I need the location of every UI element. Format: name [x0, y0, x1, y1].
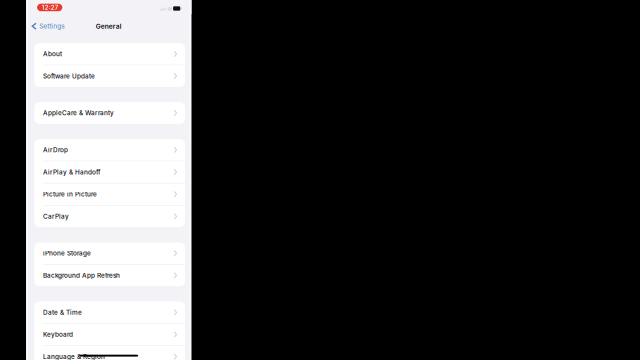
staticText: Keyboard [43, 331, 73, 338]
staticText: AirDrop [43, 146, 68, 154]
staticText: Language & Region [43, 353, 105, 360]
staticText: About [43, 50, 62, 58]
button[interactable]: Background App Refresh [34, 265, 185, 286]
button[interactable]: Keyboard [34, 324, 185, 345]
button[interactable]: AirDrop [34, 139, 185, 161]
button[interactable]: AirPlay & Handoff [34, 161, 185, 183]
staticText: General [96, 22, 122, 30]
staticText: Software Update [43, 72, 95, 80]
button[interactable]: Picture in Picture [34, 183, 185, 205]
staticText: AppleCare & Warranty [43, 109, 114, 117]
staticText: CarPlay [43, 212, 69, 220]
button[interactable]: Date & Time [34, 301, 185, 323]
button[interactable]: About [34, 43, 185, 65]
staticText: 12:27 [42, 4, 58, 11]
staticText: Picture in Picture [43, 190, 97, 198]
staticText: Settings [39, 22, 64, 30]
button[interactable]: Language & Region [34, 346, 185, 360]
button[interactable]: Software Update [34, 65, 185, 87]
staticText: Date & Time [43, 308, 82, 316]
button[interactable]: iPhone Storage [34, 242, 185, 264]
button[interactable]: AppleCare & Warranty [34, 102, 185, 124]
staticText: iPhone Storage [43, 249, 91, 257]
staticText: AirPlay & Handoff [43, 168, 100, 176]
button[interactable]: CarPlay [34, 205, 185, 227]
button[interactable]: Settings [26, 20, 70, 32]
staticText: Background App Refresh [43, 271, 120, 279]
